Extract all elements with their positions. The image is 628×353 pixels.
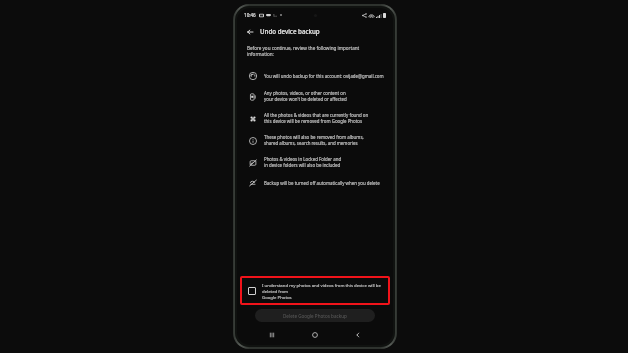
staticText: I understand my photos and videos from t… — [262, 282, 384, 300]
staticText: Undo device backup — [260, 27, 320, 35]
staticText: 5+ — [273, 13, 278, 18]
staticText: Before you continue, review the followin… — [247, 45, 360, 58]
staticText: Backup will be turned off automatically … — [264, 180, 380, 186]
staticText: All the photos & videos that are current… — [264, 112, 369, 124]
staticText: 10:46 — [244, 12, 256, 18]
staticText: These photos will also be removed from a… — [264, 134, 364, 146]
button[interactable]: Delete Google Photos backup — [255, 309, 375, 322]
staticText: You will undo backup for this account: o… — [264, 73, 384, 79]
button[interactable]: Back — [350, 327, 366, 343]
staticText: Delete Google Photos backup — [283, 313, 347, 319]
button[interactable]: I understand my photos and videos from t… — [240, 276, 390, 305]
staticText: Photos & videos in Locked Folder and in … — [264, 156, 342, 168]
button[interactable]: Home — [307, 327, 323, 343]
button[interactable]: Back — [244, 26, 255, 37]
button[interactable]: Recents — [264, 327, 280, 343]
staticText: Any photos, videos, or other content on … — [264, 90, 347, 102]
